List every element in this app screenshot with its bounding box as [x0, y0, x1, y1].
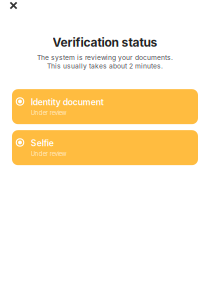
button[interactable]: Selfie [12, 130, 198, 165]
button[interactable]: Close [3, 0, 23, 11]
staticText: This usually takes about 2 minutes. [47, 62, 163, 70]
staticText: Under review [31, 109, 67, 117]
staticText: Under review [31, 150, 67, 158]
staticText: The system is reviewing your documents. [37, 53, 173, 62]
button[interactable]: Identity document [12, 89, 198, 124]
staticText: Verification status [52, 35, 157, 49]
staticText: Selfie [31, 138, 54, 148]
staticText: Identity document [31, 97, 104, 107]
